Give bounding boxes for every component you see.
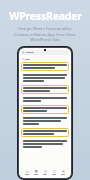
button[interactable]: Bookmarks [42,169,48,176]
button[interactable]: Settings [60,169,66,176]
button[interactable] [21,85,69,94]
button[interactable]: Sort [22,58,71,60]
staticText: WPressReader [9,9,82,23]
button[interactable] [21,105,69,114]
button[interactable] [21,73,69,83]
other: Back [22,51,25,54]
button[interactable]: Categories [33,169,39,176]
button[interactable]: Home [24,169,30,176]
button[interactable]: Profile [51,169,57,176]
button[interactable] [21,62,69,71]
button[interactable]: Back [21,50,69,55]
button[interactable] [21,96,69,103]
staticText: Design Meets Functionality: Creates a Na… [5,26,85,42]
button[interactable] [21,139,69,149]
button[interactable] [21,116,69,126]
button[interactable] [21,128,69,137]
